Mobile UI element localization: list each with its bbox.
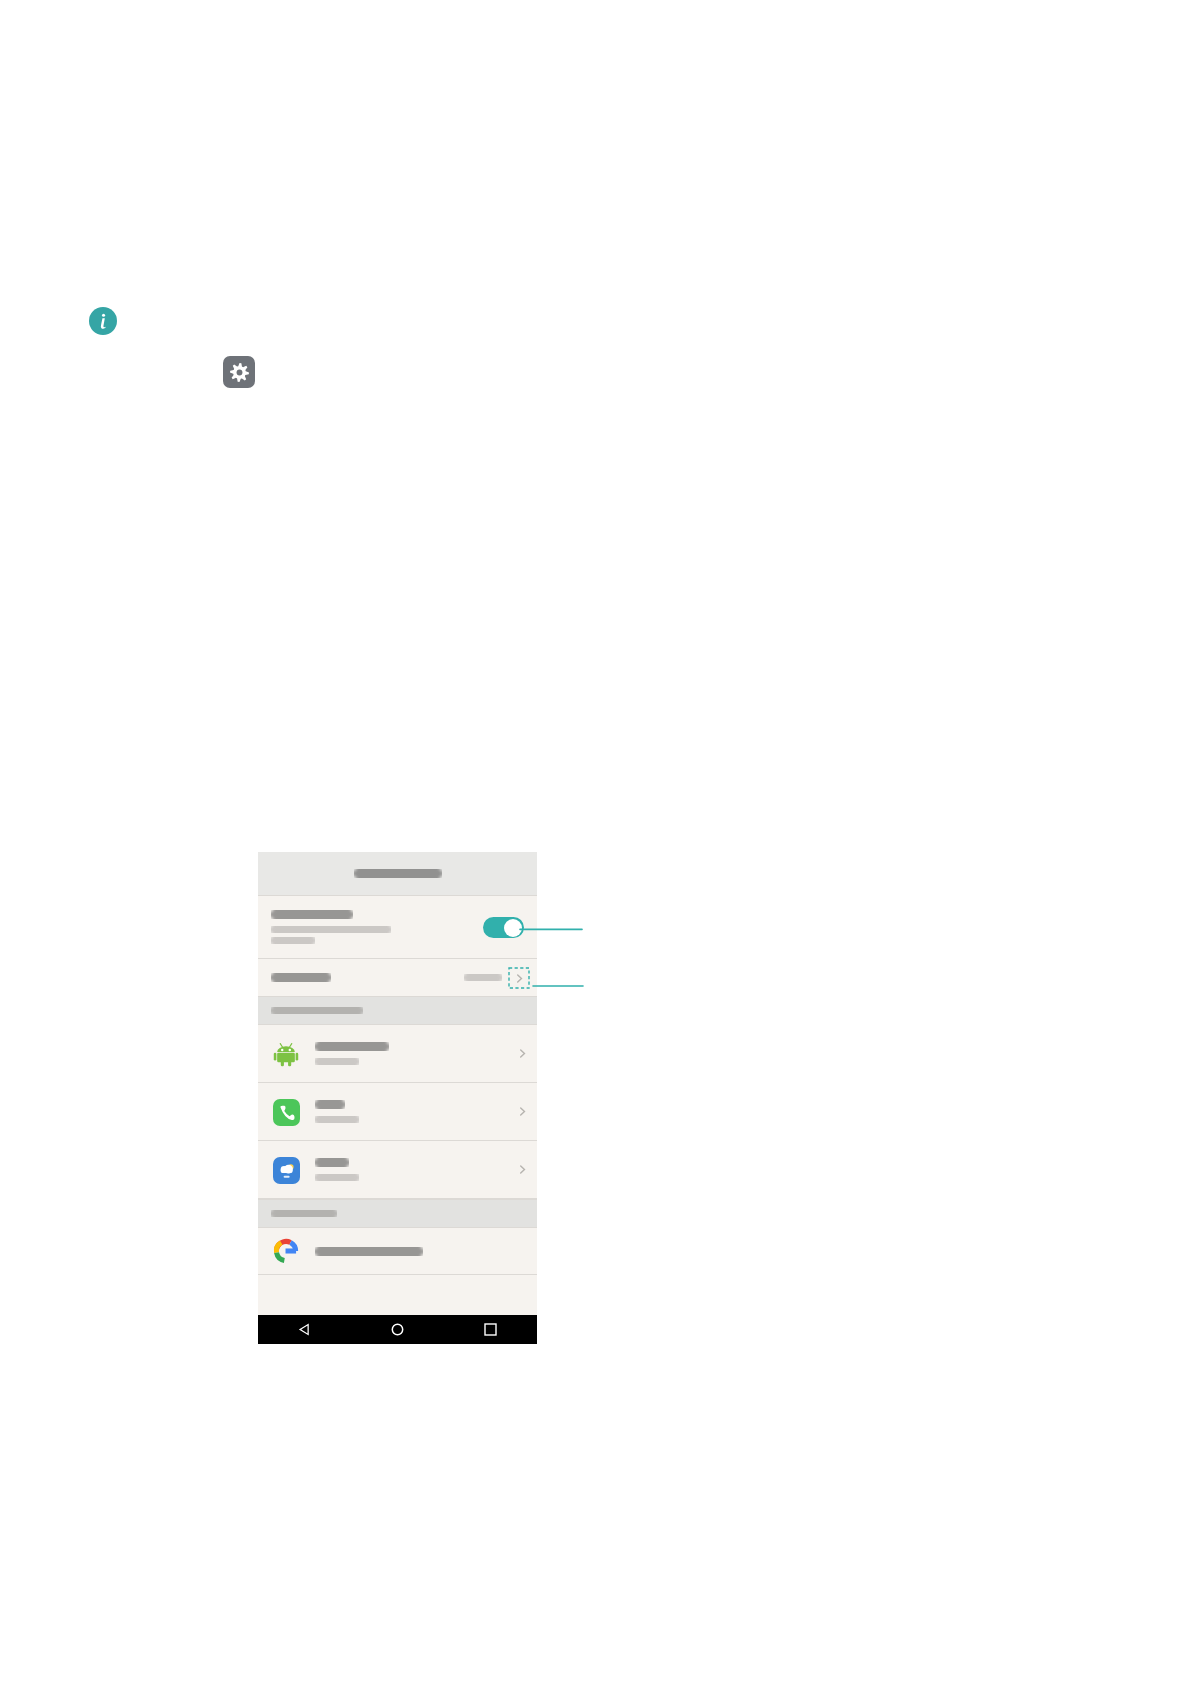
button[interactable]: Information: [89, 307, 117, 335]
button[interactable]: Access my location toggle: [258, 896, 537, 958]
button[interactable]: Home: [351, 1315, 444, 1344]
button[interactable]: [258, 1025, 537, 1082]
button[interactable]: Back: [258, 1315, 351, 1344]
button[interactable]: [258, 1141, 537, 1198]
button[interactable]: [258, 1228, 537, 1274]
button[interactable]: Settings: [223, 356, 255, 388]
button[interactable]: Recent apps: [444, 1315, 537, 1344]
button[interactable]: Access my location toggle: [483, 917, 524, 938]
button[interactable]: [258, 1083, 537, 1140]
button[interactable]: [258, 959, 537, 996]
